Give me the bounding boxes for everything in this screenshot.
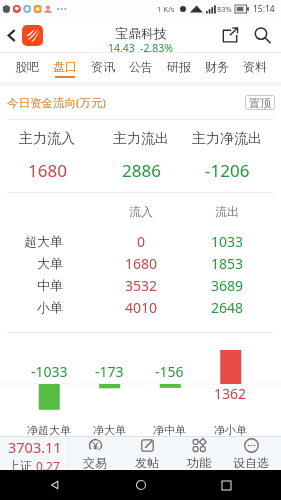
button[interactable]: 资料 [236,53,274,82]
staticText: 股吧 [15,59,39,74]
staticText: 主力净流出 [192,130,262,148]
staticText: 4010 [125,298,158,317]
staticText: 1362 [214,384,247,403]
button[interactable]: 研报 [160,53,198,82]
button[interactable]: 主力流入 [0,120,94,192]
button[interactable]: 小单 [0,296,281,318]
staticText: 上证 [8,458,32,470]
staticText: 流出 [215,204,239,219]
staticText: 今日资金流向(万元) [7,95,106,111]
staticText: 3689 [211,276,244,295]
button[interactable]: 置顶 [245,95,275,110]
button[interactable]: Recent apps [196,470,256,500]
button[interactable]: Share [214,18,245,52]
staticText: 净大单 [93,423,126,436]
staticText: 财务 [205,59,229,74]
staticText: 设自选 [233,455,269,470]
staticText: 1033 [211,232,244,251]
staticText: -1206 [205,159,250,182]
button[interactable]: App icon [22,25,43,46]
staticText: 中单 [37,277,63,293]
button[interactable]: 公告 [122,53,160,82]
staticText: 功能 [187,455,211,470]
staticText: 净小单 [214,423,247,436]
staticText: 发帖 [135,455,159,470]
button[interactable]: 盘口 [46,53,84,82]
staticText: -1033 [31,362,68,381]
button[interactable]: 发帖 [121,437,173,470]
staticText: 盘口 [53,59,77,74]
staticText: 0 [137,232,146,251]
button[interactable]: 资讯 [84,53,122,82]
staticText: 超大单 [24,233,63,249]
staticText: 交易 [83,455,107,470]
button[interactable]: 3703.11 [0,437,68,470]
staticText: 2886 [122,159,161,182]
staticText: 净超大单 [27,423,71,436]
button[interactable]: 大单 [0,252,281,274]
staticText: 流入 [129,204,153,219]
button[interactable]: Home [111,470,171,500]
staticText: 主力流入 [19,130,75,148]
staticText: 主力流出 [113,130,169,148]
staticText: 0.27% [36,458,68,470]
staticText: 资讯 [91,59,115,74]
staticText: 公告 [129,59,153,74]
staticText: 研报 [167,59,191,74]
staticText: 净中单 [153,423,186,436]
staticText: 14.43 [108,41,135,52]
staticText: 3703.11 [8,437,62,457]
staticText: 83% [217,4,232,14]
button[interactable]: 股吧 [7,53,46,82]
staticText: 宝鼎科技 [115,25,167,41]
button[interactable]: 设自选 [225,437,277,470]
button[interactable]: 功能 [173,437,225,470]
staticText: -2.83% [140,41,173,52]
button[interactable]: 中单 [0,274,281,296]
button[interactable]: 交易 [69,437,121,470]
staticText: 1680 [28,159,67,182]
staticText: 1680 [125,254,158,273]
button[interactable]: 主力流出 [94,120,188,192]
button[interactable]: 主力净流出 [188,120,281,192]
staticText: -156 [155,362,184,381]
button[interactable]: Search [245,18,280,52]
staticText: 1 K/s [157,4,175,14]
button[interactable]: Back [0,18,22,52]
staticText: 小单 [37,299,63,315]
button[interactable]: 财务 [198,53,236,82]
staticText: -173 [95,362,124,381]
staticText: 资料 [243,59,267,74]
button[interactable]: Back [25,470,85,500]
staticText: 3532 [125,276,158,295]
staticText: 2648 [211,298,244,317]
staticText: 15:14 [253,3,275,15]
staticText: 大单 [37,255,63,271]
button[interactable]: 超大单 [0,230,281,252]
staticText: 1853 [211,254,244,273]
staticText: 置顶 [249,96,271,110]
